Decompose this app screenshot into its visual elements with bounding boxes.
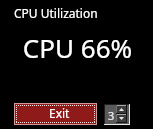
staticText: CPU Utilization	[14, 5, 98, 21]
button[interactable]: Decrease value	[116, 114, 127, 123]
staticText: 3	[108, 108, 115, 123]
staticText: CPU 66%	[1, 30, 153, 65]
button[interactable]: Increase value	[116, 105, 127, 114]
button[interactable]: Exit	[14, 103, 97, 125]
staticText: Exit	[49, 105, 70, 121]
